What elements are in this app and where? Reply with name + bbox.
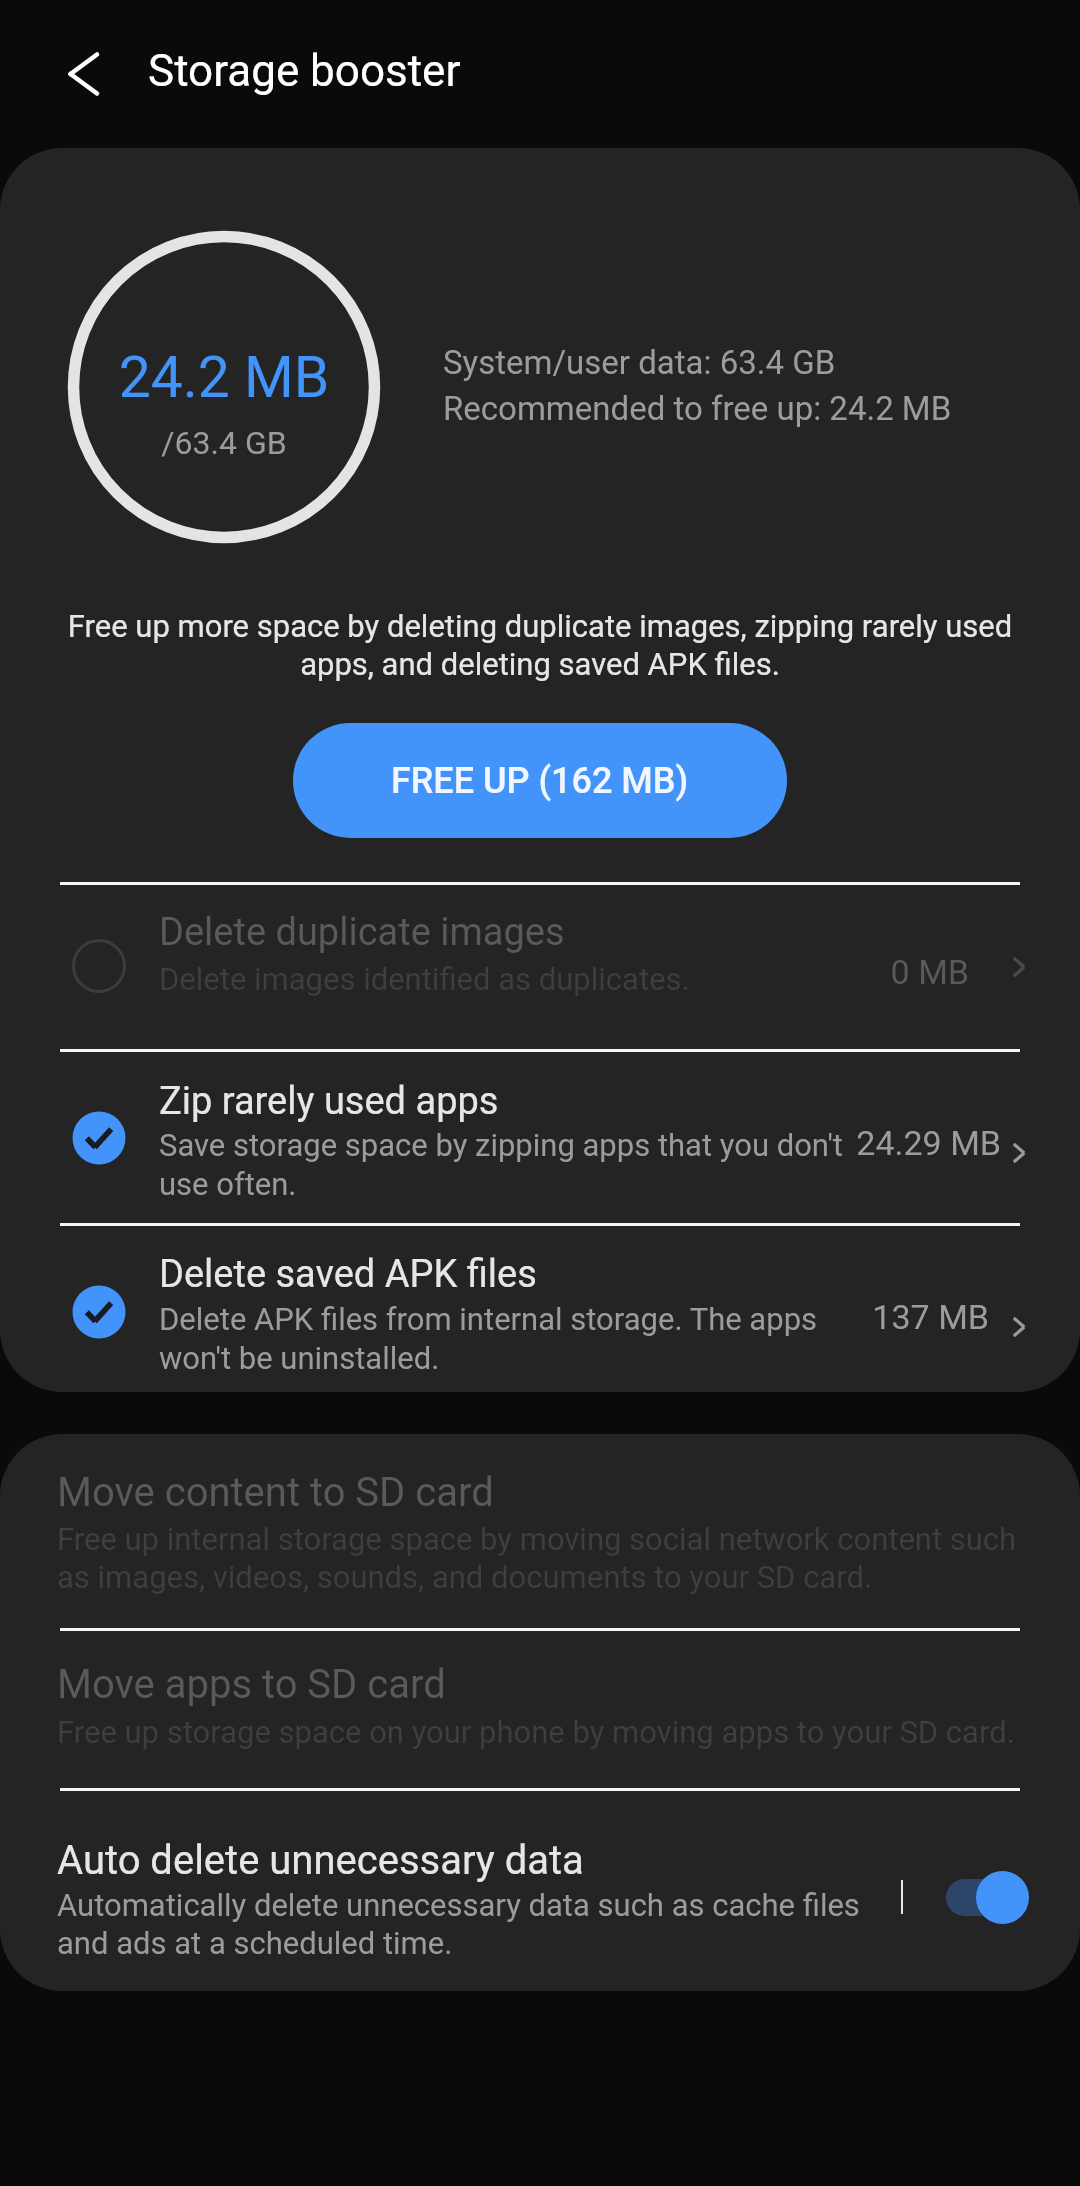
staticText: Storage booster (148, 45, 461, 97)
staticText: 0 MB (700, 952, 969, 992)
staticText: Delete APK files from internal storage. … (159, 1301, 851, 1376)
staticText: Auto delete unnecessary data (57, 1837, 584, 1884)
staticText: Recommended to free up: 24.2 MB (443, 389, 952, 428)
staticText: Delete images identified as duplicates. (159, 961, 690, 997)
button[interactable] (0, 1049, 1080, 1223)
button[interactable]: Auto delete unnecessary data (930, 1837, 1050, 1957)
staticText: Free up internal storage space by moving… (57, 1521, 1032, 1596)
button[interactable] (0, 1223, 1080, 1392)
staticText: Move apps to SD card (57, 1661, 446, 1708)
staticText: 24.29 MB (732, 1123, 1001, 1163)
button[interactable] (0, 882, 1080, 1049)
staticText: /63.4 GB (64, 424, 384, 462)
staticText: 137 MB (720, 1297, 989, 1337)
staticText: FREE UP (162 MB) (391, 760, 689, 802)
button[interactable] (0, 1434, 1080, 1628)
staticText: Move content to SD card (57, 1469, 494, 1516)
button[interactable]: Navigate up (44, 34, 124, 114)
staticText: System/user data: 63.4 GB (443, 343, 836, 382)
staticText: Free up more space by deleting duplicate… (62, 608, 1018, 683)
button[interactable] (0, 1788, 1080, 1991)
staticText: Delete saved APK files (159, 1252, 537, 1297)
staticText: Free up storage space on your phone by m… (57, 1714, 1032, 1750)
staticText: Zip rarely used apps (159, 1079, 499, 1124)
staticText: Delete duplicate images (159, 910, 565, 955)
staticText: Save storage space by zipping apps that … (159, 1127, 851, 1202)
staticText: 24.2 MB (64, 344, 384, 411)
button[interactable]: FREE UP (162 MB) (293, 723, 787, 838)
button[interactable] (0, 1628, 1080, 1788)
staticText: Automatically delete unnecessary data su… (57, 1887, 887, 1962)
